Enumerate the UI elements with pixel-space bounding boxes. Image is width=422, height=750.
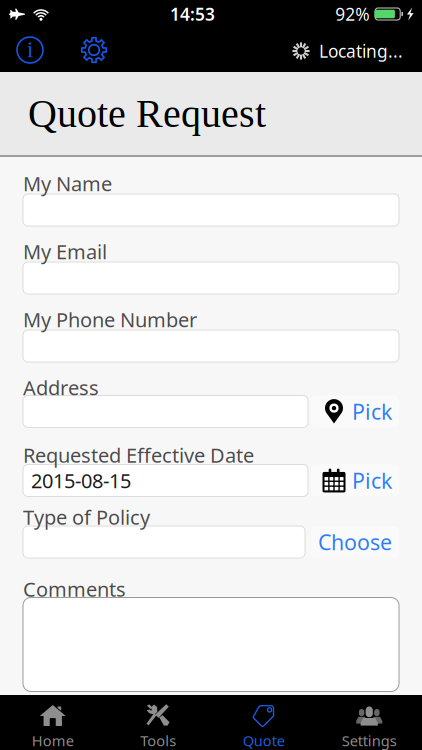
button[interactable]: Information: [8, 28, 52, 72]
button[interactable]: Quote: [211, 695, 316, 750]
staticText: 92%: [335, 2, 369, 25]
staticText: Comments: [23, 576, 126, 602]
staticText: My Email: [23, 238, 107, 265]
staticText: Pick: [352, 397, 392, 426]
staticText: Address: [23, 374, 99, 401]
staticText: Locating...: [319, 39, 403, 62]
button[interactable]: Tools: [105, 695, 211, 750]
staticText: Quote: [243, 731, 285, 750]
button[interactable]: Choose: [311, 526, 399, 558]
staticText: Home: [32, 731, 74, 750]
staticText: Choose: [318, 528, 392, 556]
staticText: 14:53: [170, 2, 215, 25]
staticText: Settings: [342, 731, 397, 750]
button[interactable]: Settings: [72, 28, 116, 72]
staticText: My Phone Number: [23, 306, 197, 333]
staticText: i: [27, 37, 33, 62]
button[interactable]: Home: [0, 695, 105, 750]
staticText: My Name: [23, 170, 112, 197]
staticText: Type of Policy: [23, 504, 150, 530]
staticText: Quote Request: [28, 91, 266, 136]
staticText: 2015-08-15: [31, 467, 131, 494]
staticText: Pick: [352, 466, 392, 495]
staticText: Requested Effective Date: [23, 442, 254, 468]
button[interactable]: Settings: [316, 695, 422, 750]
staticText: Tools: [140, 731, 176, 750]
button[interactable]: Pick: [311, 464, 399, 496]
button[interactable]: Pick: [311, 395, 399, 427]
